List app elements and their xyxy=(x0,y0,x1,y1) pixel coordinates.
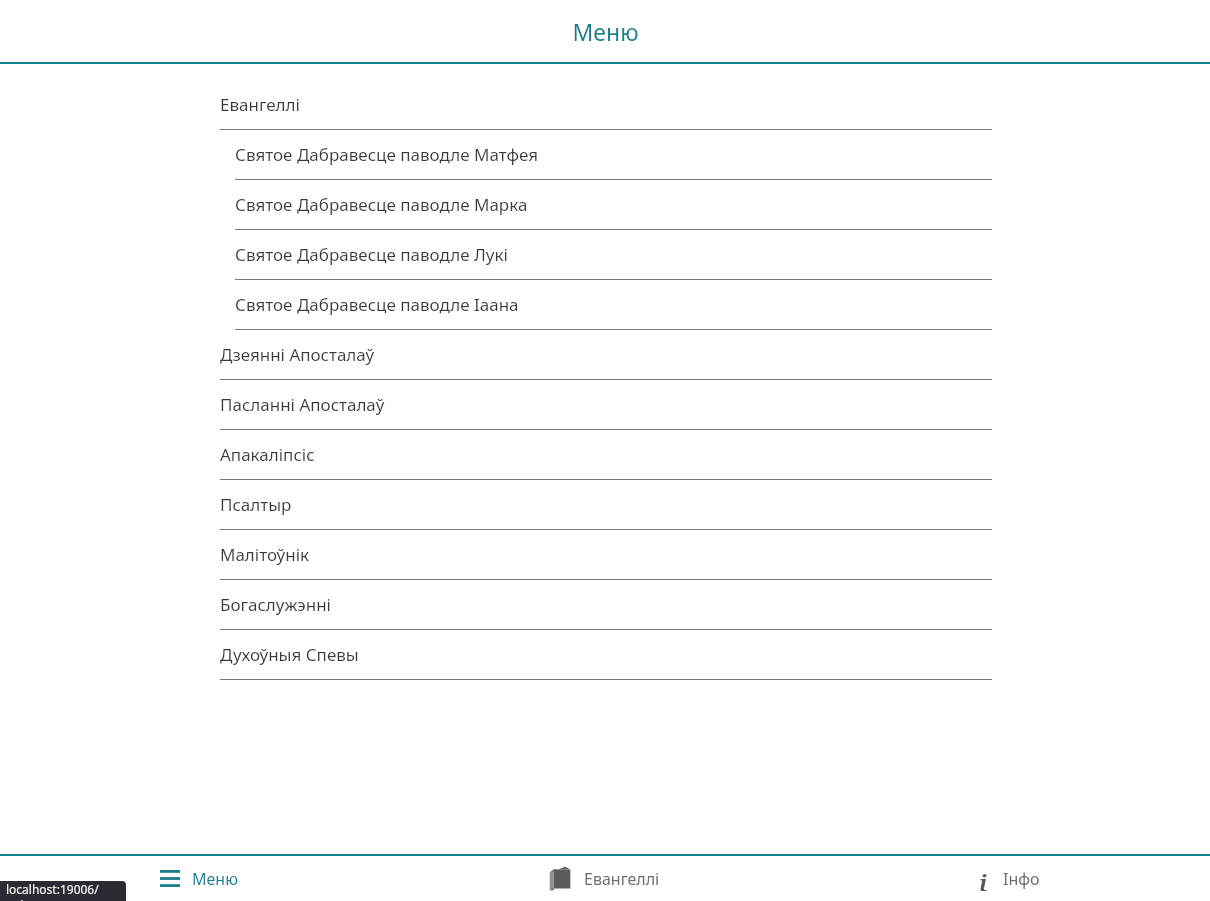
button[interactable]: Апакалiпсiс xyxy=(220,430,992,480)
button[interactable]: Евангеллi xyxy=(548,856,660,901)
button[interactable]: Iнфо xyxy=(975,856,1040,901)
staticText: Евангеллi xyxy=(584,868,660,890)
button[interactable]: Пасланнi Апосталаў xyxy=(220,380,992,430)
button[interactable]: Меню xyxy=(160,856,238,901)
button[interactable]: Святое Дабравесце паводле Матфея xyxy=(220,130,992,180)
staticText: Духоўныя Спевы xyxy=(220,643,359,666)
staticText: Евангеллi xyxy=(220,93,300,116)
staticText: Iнфо xyxy=(1003,868,1040,890)
staticText: Апакалiпсiс xyxy=(220,443,315,466)
staticText: Дзеяннi Апосталаў xyxy=(220,343,375,366)
button[interactable]: Святое Дабравесце паводле Марка xyxy=(220,180,992,230)
staticText: i xyxy=(979,867,988,891)
staticText: Малiтоўнiк xyxy=(220,543,310,566)
staticText: Богаслужэннi xyxy=(220,593,332,616)
button[interactable]: Псалтыр xyxy=(220,480,992,530)
staticText: Меню xyxy=(192,868,238,890)
button[interactable]: Малiтоўнiк xyxy=(220,530,992,580)
button[interactable]: Духоўныя Спевы xyxy=(220,630,992,680)
button[interactable]: Евангеллi xyxy=(220,80,992,130)
button[interactable]: Дзеяннi Апосталаў xyxy=(220,330,992,380)
button[interactable]: Святое Дабравесце паводле Лукi xyxy=(220,230,992,280)
staticText: Святое Дабравесце паводле Iаана xyxy=(235,293,519,316)
staticText: Святое Дабравесце паводле Матфея xyxy=(235,143,538,166)
staticText: Псалтыр xyxy=(220,493,292,516)
staticText: Пасланнi Апосталаў xyxy=(220,393,385,416)
staticText: Святое Дабравесце паводле Лукi xyxy=(235,243,508,266)
staticText: Святое Дабравесце паводле Марка xyxy=(235,193,528,216)
staticText: localhost:19006/Iнфо xyxy=(6,881,126,901)
staticText: Меню xyxy=(572,16,639,47)
button[interactable]: Богаслужэннi xyxy=(220,580,992,630)
button[interactable]: Святое Дабравесце паводле Iаана xyxy=(220,280,992,330)
